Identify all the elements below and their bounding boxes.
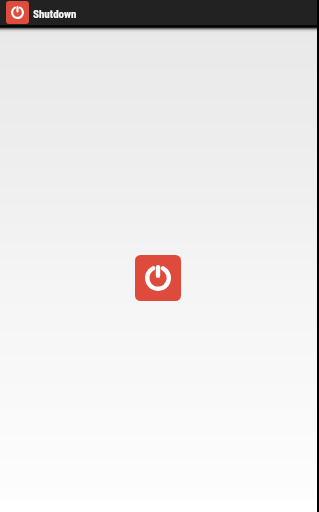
staticText: Shutdown: [33, 8, 77, 21]
button[interactable]: Shut down: [135, 255, 181, 301]
button[interactable]: Shutdown app icon: [6, 1, 29, 24]
